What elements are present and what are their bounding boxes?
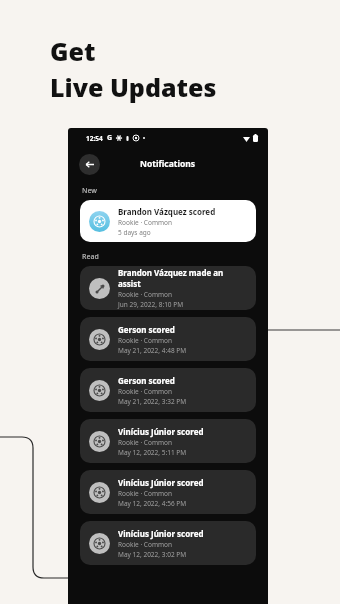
button[interactable]: Gerson scored	[80, 368, 256, 412]
staticText: May 21, 2022, 4:48 PM	[118, 346, 187, 355]
staticText: Rookie · Common	[118, 387, 172, 396]
staticText: May 12, 2022, 3:02 PM	[118, 550, 187, 559]
staticText: Gerson scored	[118, 324, 175, 335]
button[interactable]: Gerson scored	[80, 317, 256, 361]
staticText: Vinícius Júnior scored	[118, 426, 204, 437]
staticText: New	[82, 186, 97, 196]
staticText: May 12, 2022, 4:56 PM	[118, 499, 187, 508]
staticText: 12:54	[86, 134, 103, 143]
staticText: Notifications	[140, 158, 196, 170]
staticText: Brandon Vázquez scored	[118, 206, 216, 217]
staticText: Brandon Vázquez made an assist	[118, 267, 247, 289]
staticText: Jun 29, 2022, 8:10 PM	[118, 300, 184, 309]
staticText: Rookie · Common	[118, 489, 172, 498]
button[interactable]: Vinícius Júnior scored	[80, 521, 256, 565]
staticText: Rookie · Common	[118, 540, 172, 549]
button[interactable]: Vinícius Júnior scored	[80, 419, 256, 463]
button[interactable]: Vinícius Júnior scored	[80, 470, 256, 514]
staticText: May 12, 2022, 5:11 PM	[118, 448, 187, 457]
staticText: May 21, 2022, 3:32 PM	[118, 397, 187, 406]
staticText: Gerson scored	[118, 375, 175, 386]
staticText: Vinícius Júnior scored	[118, 528, 204, 539]
button[interactable]: Brandon Vázquez made an assist	[80, 266, 256, 310]
staticText: G	[107, 133, 113, 143]
staticText: Get	[50, 34, 96, 68]
staticText: Rookie · Common	[118, 290, 172, 299]
button[interactable]: Brandon Vázquez scored	[80, 200, 256, 242]
staticText: Rookie · Common	[118, 336, 172, 345]
staticText: Rookie · Common	[118, 218, 172, 227]
button[interactable]: Back	[79, 154, 100, 175]
staticText: Read	[82, 252, 99, 262]
staticText: Live Updates	[50, 70, 217, 104]
staticText: 5 days ago	[118, 228, 151, 237]
staticText: Vinícius Júnior scored	[118, 477, 204, 488]
staticText: Rookie · Common	[118, 438, 172, 447]
